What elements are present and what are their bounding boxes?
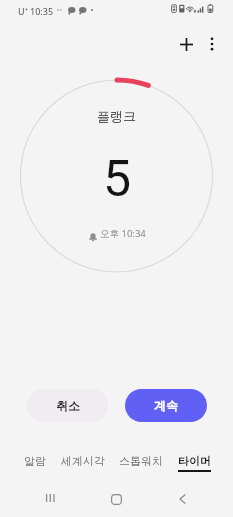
button[interactable]: 세계시각 [61,454,105,472]
staticText: 취소 [56,398,80,413]
staticText: 오후 10:34 [100,227,146,240]
staticText: 알람 [24,454,46,468]
staticText: 타이머 [178,454,211,468]
button[interactable]: 취소 [27,389,108,422]
button[interactable]: Home [98,481,134,517]
button[interactable]: Add timer [168,26,204,62]
button[interactable]: 알람 [24,454,46,472]
button[interactable]: More options [194,26,230,62]
button[interactable]: 타이머 [178,454,211,472]
button[interactable]: 스톱워치 [119,454,163,472]
staticText: 스톱워치 [119,454,163,468]
staticText: U⁺ 10:35 [18,5,54,17]
button[interactable]: Back [164,481,200,517]
button[interactable]: 계속 [125,389,207,422]
staticText: 플랭크 [97,108,136,124]
staticText: 계속 [154,398,178,413]
staticText: 세계시각 [61,454,105,468]
staticText: 5 [103,150,132,209]
button[interactable]: Recent apps [32,480,68,516]
